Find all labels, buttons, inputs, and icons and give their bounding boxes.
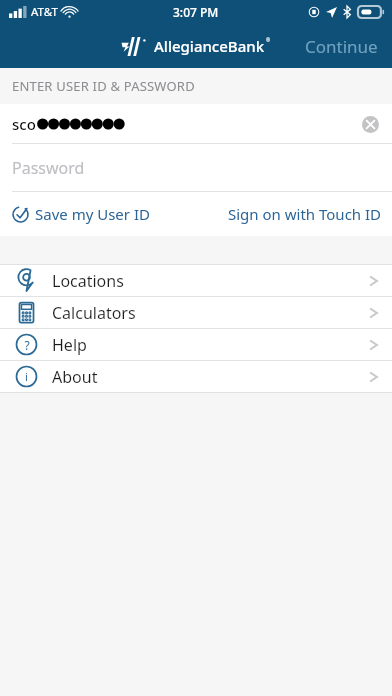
staticText: Save my User ID xyxy=(35,204,150,224)
staticText: Help xyxy=(52,334,87,356)
staticText: 3:07 PM xyxy=(173,4,219,20)
staticText: Password xyxy=(12,157,85,179)
staticText: ? xyxy=(24,337,30,353)
staticText: Calculators xyxy=(52,302,136,324)
button[interactable]: Calculators xyxy=(0,297,392,328)
staticText: AT&T xyxy=(31,4,58,20)
staticText: ENTER USER ID & PASSWORD xyxy=(12,77,195,95)
staticText: ® xyxy=(266,37,271,44)
staticText: AllegianceBank xyxy=(154,36,265,56)
button[interactable]: Locations xyxy=(0,265,392,296)
staticText: About xyxy=(52,366,98,388)
button[interactable]: sco xyxy=(0,104,392,144)
staticText: Continue xyxy=(305,35,378,58)
button[interactable]: Save my User ID xyxy=(0,196,158,232)
staticText: Locations xyxy=(52,270,124,292)
button[interactable]: ? xyxy=(0,329,392,360)
button[interactable]: Clear user ID xyxy=(358,112,382,136)
staticText: sco xyxy=(12,114,36,134)
button[interactable]: i xyxy=(0,361,392,392)
button[interactable]: Sign on with Touch ID xyxy=(218,196,392,232)
staticText: Sign on with Touch ID xyxy=(228,204,382,224)
button[interactable]: Password xyxy=(0,144,392,192)
staticText: i xyxy=(25,369,28,384)
button[interactable]: Continue xyxy=(291,25,392,68)
